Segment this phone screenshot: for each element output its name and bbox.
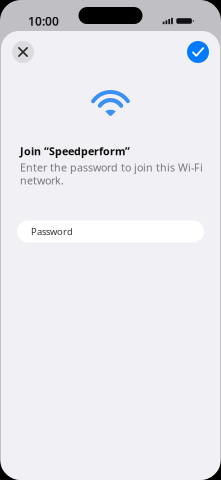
button[interactable]: Close [12, 41, 34, 63]
button[interactable]: Join network [187, 41, 209, 63]
staticText: Enter the password to join this Wi-Fi ne… [20, 160, 203, 187]
staticText: 10:00 [28, 13, 59, 29]
staticText: Join “Speedperform” [20, 144, 130, 158]
staticText: Password [31, 225, 73, 238]
